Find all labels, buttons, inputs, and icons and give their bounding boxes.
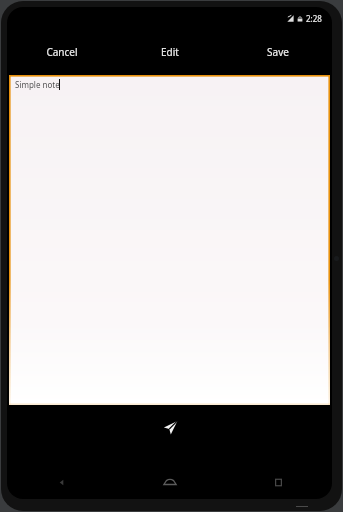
staticText: Edit	[161, 45, 179, 59]
button[interactable]: Cancel	[7, 39, 116, 65]
button[interactable]: Edit	[116, 39, 224, 65]
staticText: 2:28	[306, 13, 322, 24]
button[interactable]: Back	[7, 465, 116, 499]
button[interactable]: Send	[153, 410, 187, 444]
button[interactable]: Recents	[224, 465, 332, 499]
staticText: Cancel	[46, 45, 78, 59]
staticText: Save	[267, 45, 289, 59]
staticText: Simple note	[15, 79, 60, 90]
button[interactable]: Home	[116, 465, 224, 499]
button[interactable]: Simple note	[9, 75, 330, 405]
button[interactable]: Save	[224, 39, 332, 65]
